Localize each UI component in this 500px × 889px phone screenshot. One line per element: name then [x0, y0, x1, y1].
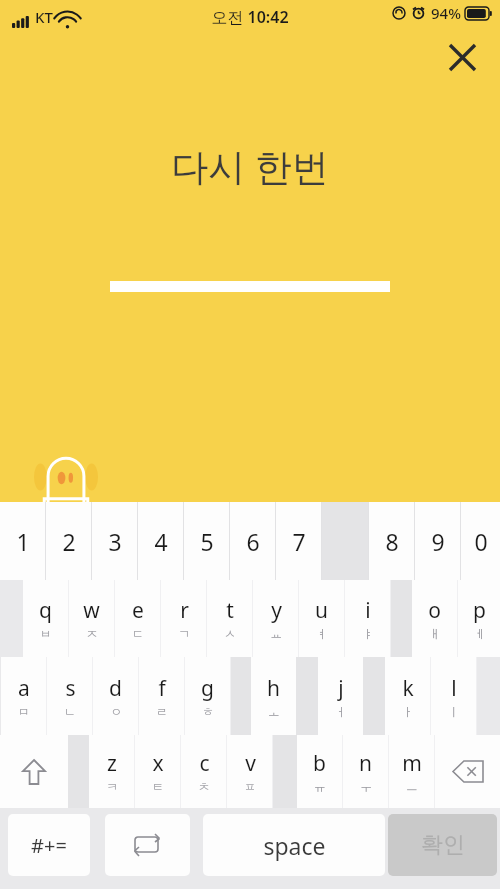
button[interactable]: o [412, 580, 457, 657]
staticText: x [152, 749, 164, 778]
staticText: z [107, 749, 117, 778]
staticText: s [65, 674, 76, 703]
staticText: j [338, 674, 344, 703]
button[interactable]: e [115, 580, 160, 657]
staticText: d [109, 674, 122, 703]
staticText: ㅌ [152, 779, 164, 794]
button[interactable]: w [69, 580, 114, 657]
staticText: p [473, 596, 486, 625]
staticText: ㅣ [448, 704, 460, 719]
button[interactable]: 2 [46, 502, 91, 580]
staticText: v [245, 749, 256, 778]
button[interactable]: Backspace [435, 735, 500, 808]
staticText: g [201, 674, 214, 703]
staticText: #+= [31, 832, 67, 859]
staticText: r [180, 596, 189, 625]
staticText: ㄴ [64, 704, 76, 719]
button[interactable]: 7 [276, 502, 321, 580]
staticText: KT [35, 7, 53, 27]
button[interactable]: r [161, 580, 206, 657]
button[interactable]: space [203, 814, 385, 876]
button[interactable]: f [139, 657, 184, 735]
staticText: space [263, 830, 326, 861]
button[interactable]: h [251, 657, 296, 735]
staticText: ㅕ [316, 626, 328, 641]
button[interactable]: 0 [461, 502, 500, 580]
staticText: h [267, 674, 280, 703]
button[interactable]: 1 [0, 502, 45, 580]
staticText: ㅏ [402, 704, 414, 719]
button[interactable]: 9 [415, 502, 460, 580]
staticText: ㅐ [429, 626, 441, 641]
staticText: ㅠ [314, 779, 326, 794]
staticText: ㅁ [18, 704, 30, 719]
staticText: l [451, 674, 457, 703]
staticText: f [158, 674, 166, 703]
button[interactable]: v [227, 735, 272, 808]
staticText: ㅊ [198, 779, 210, 794]
button[interactable]: n [343, 735, 388, 808]
button[interactable]: Shift [0, 735, 68, 808]
staticText: ㄷ [132, 626, 144, 641]
button[interactable]: j [318, 657, 363, 735]
staticText: ㅋ [106, 779, 118, 794]
button[interactable]: a [1, 657, 46, 735]
button[interactable]: c [181, 735, 226, 808]
button[interactable]: d [93, 657, 138, 735]
staticText: ㅛ [270, 626, 282, 641]
staticText: b [313, 749, 326, 778]
staticText: 9 [431, 526, 445, 557]
staticText: ㅅ [224, 626, 236, 641]
staticText: k [402, 674, 414, 703]
button[interactable]: g [185, 657, 230, 735]
button[interactable]: m [389, 735, 434, 808]
staticText: 오전 10:42 [211, 6, 289, 28]
staticText: 2 [62, 526, 76, 557]
staticText: o [428, 596, 441, 625]
button[interactable]: u [299, 580, 344, 657]
button[interactable]: p [458, 580, 500, 657]
staticText: ㄹ [156, 704, 168, 719]
button[interactable]: s [47, 657, 92, 735]
staticText: 8 [385, 526, 399, 557]
button[interactable]: z [89, 735, 134, 808]
button[interactable]: 5 [184, 502, 229, 580]
button[interactable]: x [135, 735, 180, 808]
button[interactable]: 4 [138, 502, 183, 580]
button[interactable]: Close [436, 31, 488, 83]
button[interactable]: 6 [230, 502, 275, 580]
staticText: 4 [154, 526, 168, 557]
staticText: u [315, 596, 328, 625]
button[interactable]: 8 [369, 502, 414, 580]
button[interactable]: y [253, 580, 298, 657]
staticText: n [359, 749, 372, 778]
staticText: c [199, 749, 210, 778]
button[interactable]: b [297, 735, 342, 808]
staticText: ㅑ [362, 626, 374, 641]
staticText: 다시 한번 [171, 140, 329, 191]
staticText: ㅇ [110, 704, 122, 719]
staticText: m [402, 749, 422, 778]
button[interactable]: q [23, 580, 68, 657]
staticText: 1 [16, 526, 30, 557]
button[interactable]: l [431, 657, 476, 735]
button[interactable]: t [207, 580, 252, 657]
staticText: ㄱ [178, 626, 190, 641]
button[interactable]: i [345, 580, 390, 657]
button[interactable]: 3 [92, 502, 137, 580]
button[interactable]: k [385, 657, 430, 735]
staticText: i [365, 596, 371, 625]
staticText: 5 [200, 526, 214, 557]
staticText: 확인 [421, 831, 465, 859]
staticText: ㅜ [360, 779, 372, 794]
staticText: ㅔ [474, 626, 486, 641]
staticText: 94% [431, 3, 461, 23]
staticText: ㅎ [202, 704, 214, 719]
button[interactable]: 확인 [388, 814, 497, 876]
button[interactable]: #+= [8, 814, 90, 876]
staticText: e [132, 596, 144, 625]
staticText: ㅈ [86, 626, 98, 641]
button[interactable]: Change language [105, 814, 190, 876]
staticText: 7 [292, 526, 306, 557]
